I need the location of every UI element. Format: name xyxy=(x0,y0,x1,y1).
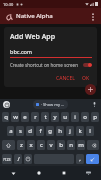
button[interactable]: Voice input xyxy=(91,101,98,108)
staticText: i xyxy=(74,113,76,121)
button[interactable]: Back xyxy=(0,166,26,180)
button[interactable]: r xyxy=(31,112,39,122)
staticText: OK xyxy=(82,75,90,82)
staticText: 10:30 xyxy=(3,2,14,7)
staticText: x xyxy=(29,141,33,149)
button[interactable]: v xyxy=(47,140,55,150)
staticText: c xyxy=(40,141,43,149)
staticText: m xyxy=(78,141,84,149)
button[interactable]: Home xyxy=(26,166,51,180)
button[interactable]: Clipboard history xyxy=(3,101,10,108)
button[interactable]: / xyxy=(14,154,22,164)
button[interactable]: j xyxy=(66,126,74,136)
staticText: bbc.com xyxy=(10,48,32,55)
button[interactable]: d xyxy=(26,126,34,136)
button[interactable]: bbc.com xyxy=(10,48,92,58)
staticText: Create shortcut on home screen xyxy=(10,62,81,68)
staticText: r xyxy=(34,113,37,121)
button[interactable]: Create shortcut on home screen xyxy=(10,62,92,68)
button[interactable]: Native Alpha logo xyxy=(3,11,14,22)
button[interactable]: h xyxy=(56,126,64,136)
button[interactable]: , xyxy=(76,154,84,164)
staticText: h xyxy=(58,127,62,135)
button[interactable]: Shift xyxy=(2,140,15,150)
staticText: l xyxy=(89,127,91,135)
button[interactable]: ?123 xyxy=(2,154,12,164)
button[interactable]: b xyxy=(57,140,65,150)
staticText: · Show my … xyxy=(41,102,65,107)
button[interactable]: Emoji xyxy=(24,154,32,164)
button[interactable]: Add web app xyxy=(85,84,96,95)
button[interactable]: Hide keyboard xyxy=(76,166,101,180)
staticText: q xyxy=(4,113,8,121)
staticText: v xyxy=(49,141,53,149)
staticText: o xyxy=(83,113,87,121)
staticText: z xyxy=(20,141,23,149)
button[interactable]: s xyxy=(16,126,24,136)
staticText: , xyxy=(79,155,81,163)
button[interactable]: Recent apps xyxy=(51,166,76,180)
button[interactable]: q xyxy=(2,112,9,122)
button[interactable]: z xyxy=(17,140,25,150)
staticText: f xyxy=(39,127,42,135)
staticText: b xyxy=(59,141,63,149)
staticText: a xyxy=(9,127,13,135)
staticText: y xyxy=(53,113,57,121)
staticText: Add Web App xyxy=(10,32,55,42)
button[interactable]: Enter xyxy=(86,154,99,164)
button[interactable]: OK xyxy=(80,73,92,84)
button[interactable]: t xyxy=(41,112,49,122)
button[interactable]: p xyxy=(91,112,99,122)
staticText: / xyxy=(17,155,20,163)
button[interactable]: More options xyxy=(87,11,98,22)
staticText: e xyxy=(23,113,27,121)
staticText: j xyxy=(69,127,71,135)
button[interactable]: g xyxy=(46,126,54,136)
button[interactable]: x xyxy=(27,140,35,150)
button[interactable]: i xyxy=(71,112,79,122)
button[interactable]: c xyxy=(37,140,45,150)
staticText: CANCEL xyxy=(56,75,75,82)
staticText: p xyxy=(93,113,97,121)
button[interactable]: u xyxy=(61,112,69,122)
button[interactable]: y xyxy=(51,112,59,122)
staticText: d xyxy=(28,127,32,135)
staticText: w xyxy=(13,113,18,121)
staticText: s xyxy=(19,127,22,135)
staticText: Native Alpha xyxy=(16,12,53,20)
button[interactable]: l xyxy=(86,126,94,136)
button[interactable]: Backspace xyxy=(87,140,99,150)
button[interactable]: CANCEL xyxy=(54,73,77,84)
staticText: u xyxy=(63,113,67,121)
staticText: ?123 xyxy=(3,157,11,162)
staticText: n xyxy=(69,141,73,149)
button[interactable]: a xyxy=(7,126,14,136)
button[interactable]: w xyxy=(11,112,19,122)
button[interactable]: f xyxy=(36,126,44,136)
button[interactable]: e xyxy=(21,112,29,122)
staticText: t xyxy=(44,113,47,121)
button[interactable]: · Show my … xyxy=(33,100,68,109)
button[interactable]: k xyxy=(76,126,84,136)
staticText: g xyxy=(48,127,52,135)
button[interactable]: n xyxy=(67,140,75,150)
staticText: k xyxy=(78,127,82,135)
button[interactable]: m xyxy=(77,140,85,150)
button[interactable]: o xyxy=(81,112,89,122)
